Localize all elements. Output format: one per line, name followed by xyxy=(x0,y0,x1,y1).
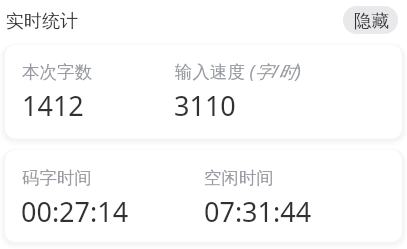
staticText: 隐藏 xyxy=(354,10,389,32)
staticText: 码字时间 xyxy=(22,167,92,189)
staticText: 空闲时间 xyxy=(204,167,274,189)
staticText: 实时统计 xyxy=(6,10,78,33)
button[interactable] xyxy=(5,45,402,139)
staticText: 3110 xyxy=(174,87,236,124)
button[interactable] xyxy=(5,150,402,242)
button[interactable]: 隐藏 xyxy=(343,6,398,34)
staticText: 输入速度 (字/时) xyxy=(175,59,301,83)
staticText: 本次字数 xyxy=(22,61,92,83)
staticText: 07:31:44 xyxy=(204,193,312,230)
staticText: 00:27:14 xyxy=(21,193,129,230)
staticText: 1412 xyxy=(22,87,84,124)
